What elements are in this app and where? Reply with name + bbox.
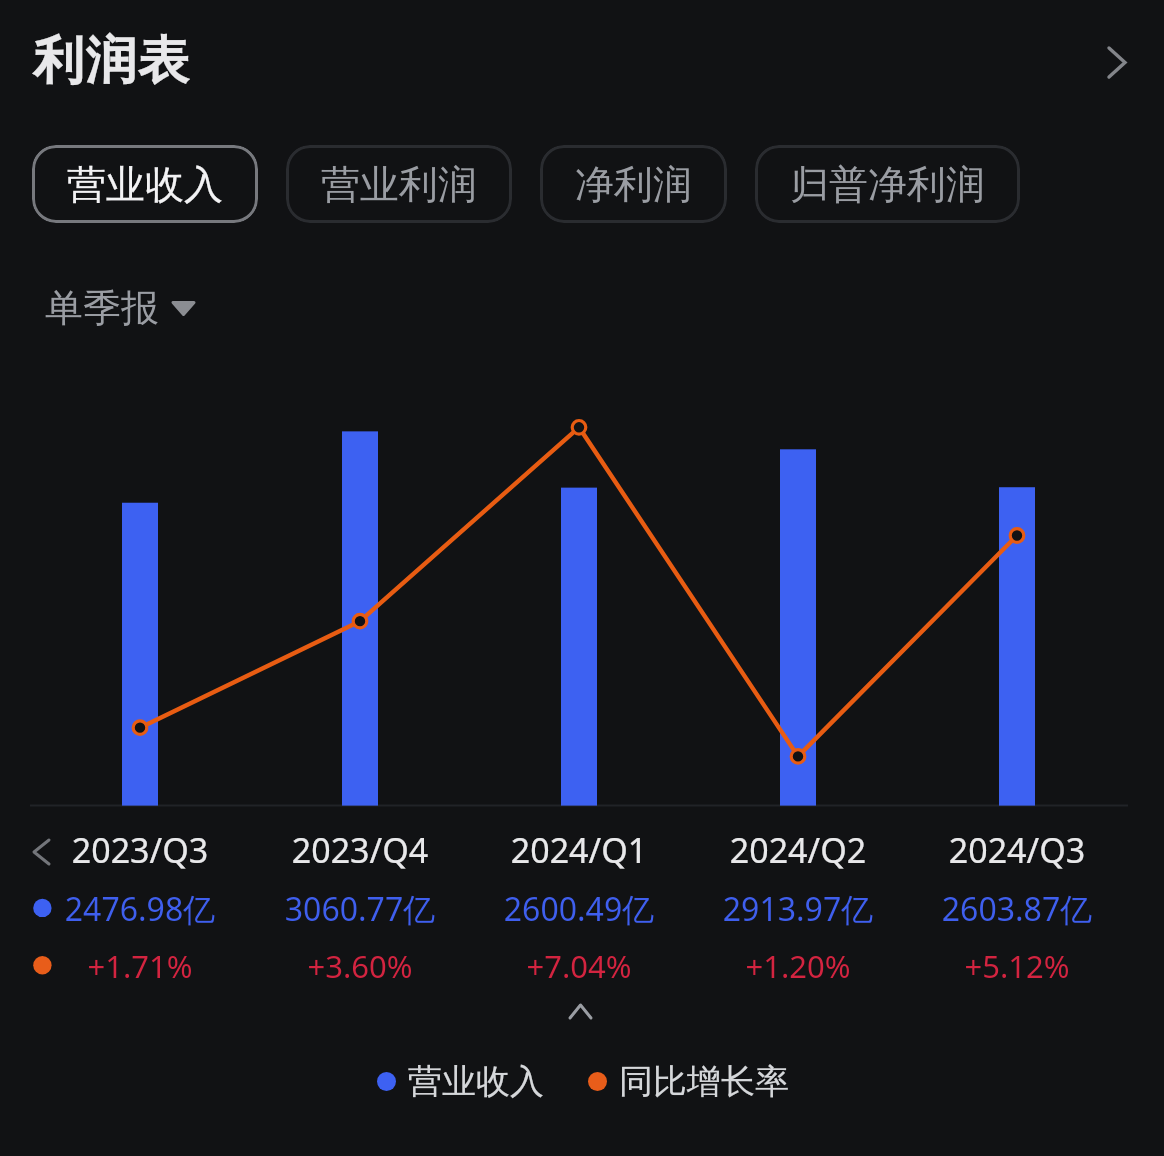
staticText: 2024/Q3: [907, 827, 1127, 873]
staticText: 2023/Q4: [250, 827, 470, 873]
staticText: 同比增长率: [619, 1060, 789, 1103]
button[interactable]: 归普净利润: [755, 145, 1020, 223]
staticText: 营业收入: [408, 1060, 544, 1103]
button[interactable]: Collapse: [551, 990, 609, 1032]
staticText: +5.12%: [907, 945, 1127, 987]
staticText: +7.04%: [469, 945, 689, 987]
button[interactable]: 2024/Q3: [907, 827, 1127, 987]
staticText: 净利润: [575, 160, 692, 209]
staticText: 2024/Q2: [688, 827, 908, 873]
staticText: 2913.97亿: [688, 887, 908, 931]
button[interactable]: 2023/Q4: [250, 827, 470, 987]
staticText: +3.60%: [250, 945, 470, 987]
button[interactable]: 净利润: [540, 145, 727, 223]
staticText: +1.20%: [688, 945, 908, 987]
button[interactable]: 2023/Q3: [30, 827, 250, 987]
button[interactable]: 单季报: [45, 284, 196, 332]
button[interactable]: 2024/Q2: [688, 827, 908, 987]
button[interactable]: 营业利润: [286, 145, 512, 223]
staticText: 2023/Q3: [30, 827, 250, 873]
staticText: 归普净利润: [790, 160, 985, 209]
staticText: 3060.77亿: [250, 887, 470, 931]
staticText: 2603.87亿: [907, 887, 1127, 931]
staticText: 营业收入: [67, 160, 223, 209]
staticText: 2476.98亿: [30, 887, 250, 931]
button[interactable]: 营业收入: [32, 145, 258, 223]
staticText: 2600.49亿: [469, 887, 689, 931]
staticText: 利润表: [33, 29, 191, 93]
button[interactable]: 2024/Q1: [469, 827, 689, 987]
staticText: 2024/Q1: [469, 827, 689, 873]
button[interactable]: Open profit statement: [1095, 39, 1139, 85]
staticText: +1.71%: [30, 945, 250, 987]
staticText: 单季报: [45, 284, 159, 332]
button[interactable]: 营业收入: [377, 1060, 789, 1103]
button[interactable]: Previous quarters: [19, 827, 63, 877]
staticText: 营业利润: [321, 160, 477, 209]
